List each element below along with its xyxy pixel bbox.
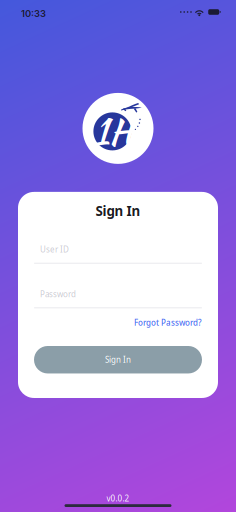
staticText: v0.0.2: [106, 493, 129, 504]
button[interactable]: Sign In: [34, 346, 202, 373]
staticText: User ID: [40, 244, 69, 255]
staticText: Password: [40, 289, 76, 299]
staticText: Sign In: [95, 202, 140, 220]
button[interactable]: Forgot Password?: [34, 315, 202, 330]
staticText: Forgot Password?: [134, 317, 202, 328]
staticText: 10:33: [21, 8, 46, 19]
staticText: 1H: [94, 107, 132, 157]
staticText: Sign In: [105, 354, 131, 365]
